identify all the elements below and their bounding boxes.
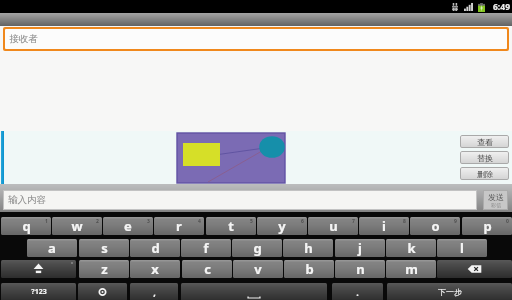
button[interactable]: k [386, 239, 436, 257]
staticText: b [305, 260, 314, 278]
staticText: 输入内容 [8, 194, 46, 206]
staticText: z [101, 260, 108, 278]
staticText: p [483, 217, 492, 235]
button[interactable]: Space [181, 283, 327, 300]
staticText: 6 [301, 218, 304, 225]
staticText: t [228, 217, 234, 235]
staticText: 8 [403, 218, 406, 225]
staticText: w [71, 217, 83, 235]
button[interactable]: z [79, 260, 129, 278]
staticText: x [151, 260, 159, 278]
staticText: 6:49 [493, 1, 510, 13]
button[interactable]: d [130, 239, 180, 257]
button[interactable]: 输入内容 [3, 190, 477, 210]
staticText: m [405, 260, 418, 278]
staticText: s [101, 239, 108, 257]
staticText: 1 [45, 218, 48, 225]
staticText: 2 [96, 218, 99, 225]
staticText: k [407, 239, 416, 257]
button[interactable]: Backspace [437, 260, 512, 278]
button[interactable]: t [206, 217, 256, 235]
button[interactable]: i [359, 217, 409, 235]
staticText: 4 [198, 218, 201, 225]
staticText: 7 [352, 218, 355, 225]
button[interactable]: u [308, 217, 358, 235]
staticText: 下一步 [438, 287, 462, 297]
button[interactable]: 查看 [460, 135, 509, 148]
staticText: q [22, 217, 31, 235]
button[interactable]: 删除 [460, 167, 509, 180]
staticText: 查看 [477, 137, 493, 147]
staticText: ?123 [31, 287, 47, 297]
button[interactable]: f [181, 239, 231, 257]
button[interactable]: e [103, 217, 153, 235]
staticText: d [151, 239, 160, 257]
button[interactable]: 接收者 [5, 29, 507, 49]
button[interactable]: w [52, 217, 102, 235]
button[interactable]: 下一步 [387, 283, 512, 300]
button[interactable]: v [233, 260, 283, 278]
staticText: g [253, 239, 262, 257]
button[interactable]: . [332, 283, 383, 300]
button[interactable]: h [283, 239, 333, 257]
staticText: v [254, 260, 262, 278]
staticText: e [124, 217, 132, 235]
staticText: a [48, 239, 56, 257]
staticText: r [176, 217, 182, 235]
button[interactable]: q [1, 217, 51, 235]
staticText: u [329, 217, 338, 235]
staticText: i [382, 217, 386, 235]
staticText: j [358, 239, 362, 257]
staticText: 3 [147, 218, 150, 225]
staticText: c [204, 260, 211, 278]
button[interactable]: 替换 [460, 151, 509, 164]
staticText: 0 [506, 218, 509, 225]
button[interactable]: p [462, 217, 512, 235]
button[interactable]: ?123 [1, 283, 76, 300]
staticText: 5 [250, 218, 253, 225]
button[interactable]: , [130, 283, 178, 300]
button[interactable]: x [130, 260, 180, 278]
button[interactable]: g [232, 239, 282, 257]
staticText: h [304, 239, 313, 257]
staticText: 接收者 [9, 33, 38, 45]
button[interactable]: a [27, 239, 77, 257]
staticText: 替换 [477, 153, 493, 163]
staticText: l [460, 239, 464, 257]
staticText: 删除 [477, 169, 493, 179]
button[interactable]: Change input method [78, 283, 127, 300]
button[interactable]: 发送 [483, 190, 508, 210]
staticText: 9 [454, 218, 457, 225]
staticText: . [356, 286, 359, 298]
button[interactable]: y [257, 217, 307, 235]
button[interactable]: n [335, 260, 385, 278]
staticText: , [153, 286, 156, 298]
staticText: 发送 [488, 192, 504, 202]
button[interactable]: b [284, 260, 334, 278]
button[interactable]: c [182, 260, 232, 278]
staticText: n [356, 260, 365, 278]
staticText: o [431, 217, 440, 235]
staticText: y [278, 217, 286, 235]
button[interactable]: j [335, 239, 385, 257]
button[interactable]: m [386, 260, 436, 278]
button[interactable]: Shift [1, 260, 76, 278]
staticText: 彩信 [491, 202, 501, 208]
button[interactable]: s [79, 239, 129, 257]
button[interactable]: r [154, 217, 204, 235]
staticText: f [203, 239, 209, 257]
button[interactable]: l [437, 239, 487, 257]
button[interactable]: o [410, 217, 460, 235]
